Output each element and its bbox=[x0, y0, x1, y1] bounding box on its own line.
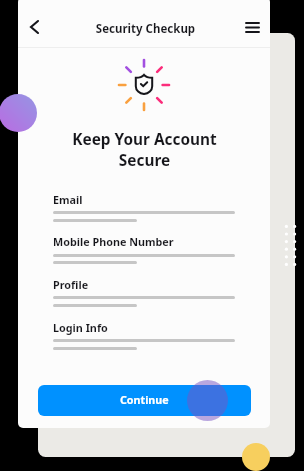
staticText: Security Checkup bbox=[19, 21, 272, 37]
staticText: Mobile Phone Number bbox=[53, 234, 174, 249]
staticText: Profile bbox=[53, 277, 89, 292]
staticText: Keep Your Account Secure bbox=[18, 129, 271, 171]
staticText: Login Info bbox=[53, 320, 108, 335]
staticText: Continue bbox=[120, 393, 169, 408]
staticText: Email bbox=[53, 192, 83, 207]
button[interactable]: Menu bbox=[239, 14, 266, 41]
button[interactable]: Back bbox=[21, 13, 48, 40]
button[interactable]: Continue bbox=[38, 385, 251, 416]
